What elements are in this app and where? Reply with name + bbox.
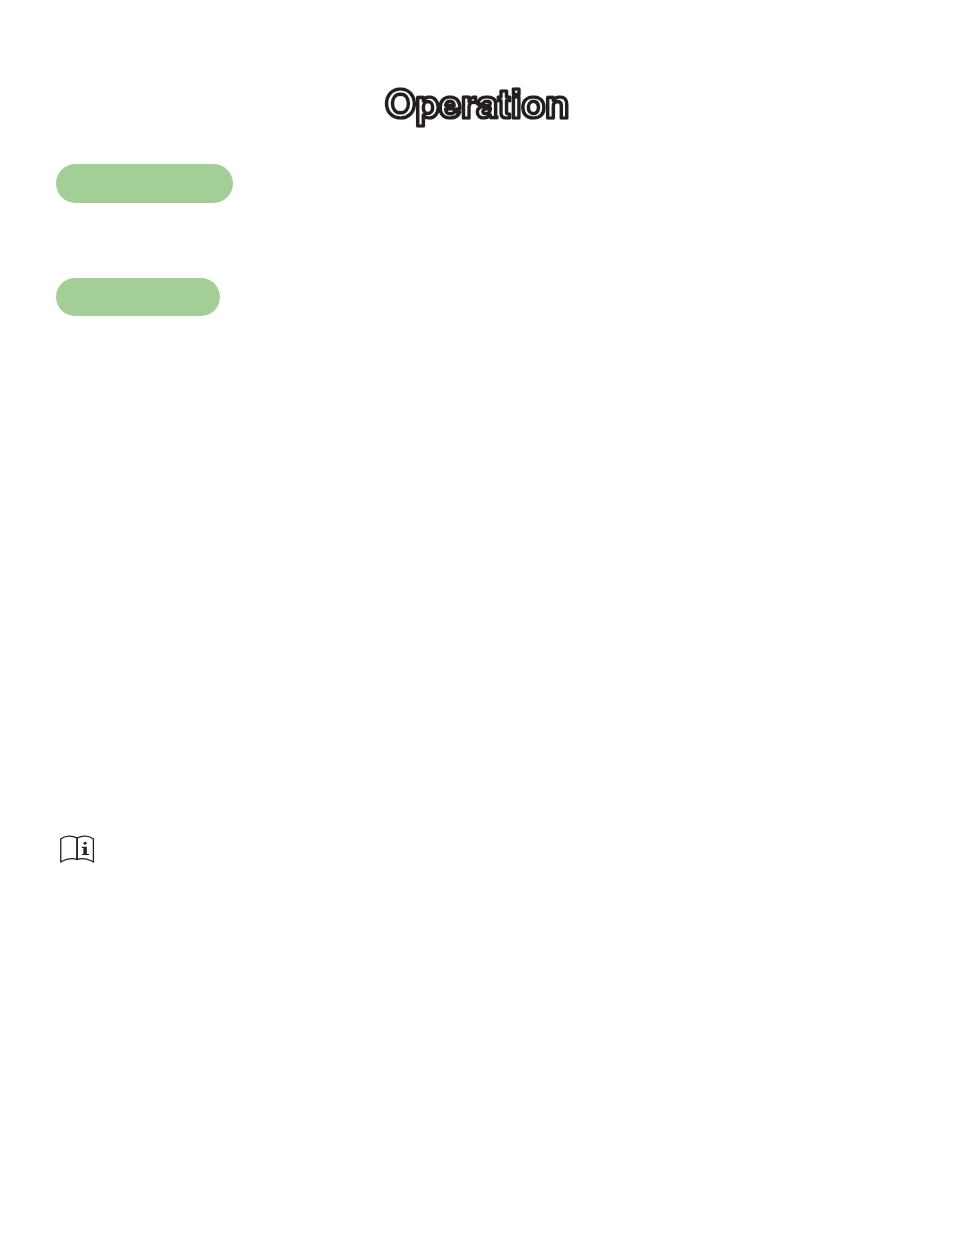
button[interactable] (56, 278, 220, 316)
staticText: Operation (385, 74, 570, 131)
button[interactable]: Consult the instruction manual (60, 833, 94, 862)
button[interactable] (56, 164, 233, 203)
